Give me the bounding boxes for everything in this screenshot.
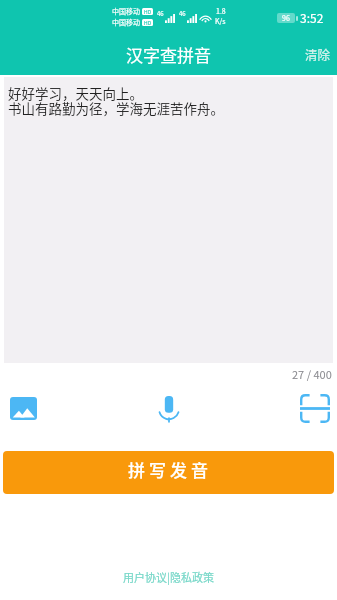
staticText: 46: [179, 9, 186, 18]
staticText: 46: [157, 9, 164, 18]
staticText: 96: [282, 13, 290, 23]
staticText: 拼写发音: [128, 457, 212, 482]
button[interactable]: Scan text: [296, 391, 334, 425]
staticText: 好好学习，天天向上。 书山有路勤为径，学海无涯苦作舟。: [8, 83, 224, 118]
button[interactable]: Pick image: [4, 391, 42, 425]
button[interactable]: 拼写发音: [3, 451, 334, 494]
staticText: 27 / 400: [292, 366, 332, 382]
button[interactable]: 清除: [293, 37, 337, 71]
staticText: HD: [144, 8, 152, 15]
staticText: HD: [144, 19, 152, 26]
staticText: 用户协议|隐私政策: [123, 569, 214, 585]
staticText: 汉字查拼音: [126, 42, 211, 67]
staticText: 中国移动: [112, 6, 140, 16]
button[interactable]: Voice input: [150, 391, 188, 425]
staticText: 中国移动: [112, 17, 140, 27]
staticText: K/s: [215, 16, 226, 26]
staticText: 3:52: [300, 9, 324, 26]
button[interactable]: 用户协议|隐私政策: [117, 565, 220, 589]
staticText: 清除: [305, 45, 331, 63]
staticText: 1.8: [216, 6, 226, 16]
